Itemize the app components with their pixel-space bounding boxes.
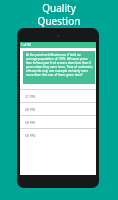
button[interactable]: 37 YRS: [20, 89, 96, 102]
staticText: 48 YRS: [25, 107, 36, 111]
button[interactable]: 48 YRS: [20, 102, 96, 115]
button[interactable]: 58 YRS: [20, 115, 96, 128]
staticText: 1 of 30: [21, 43, 31, 47]
staticText: Quality Question: [0, 1, 118, 28]
button[interactable]: 1 of 30: [20, 42, 96, 48]
staticText: 37 YRS: [25, 94, 36, 98]
staticText: 68 YRS: [25, 133, 36, 137]
staticText: 58 YRS: [25, 120, 36, 124]
staticText: At the point web Maximums if hold we ave…: [26, 53, 93, 77]
button[interactable]: 68 YRS: [20, 128, 96, 141]
